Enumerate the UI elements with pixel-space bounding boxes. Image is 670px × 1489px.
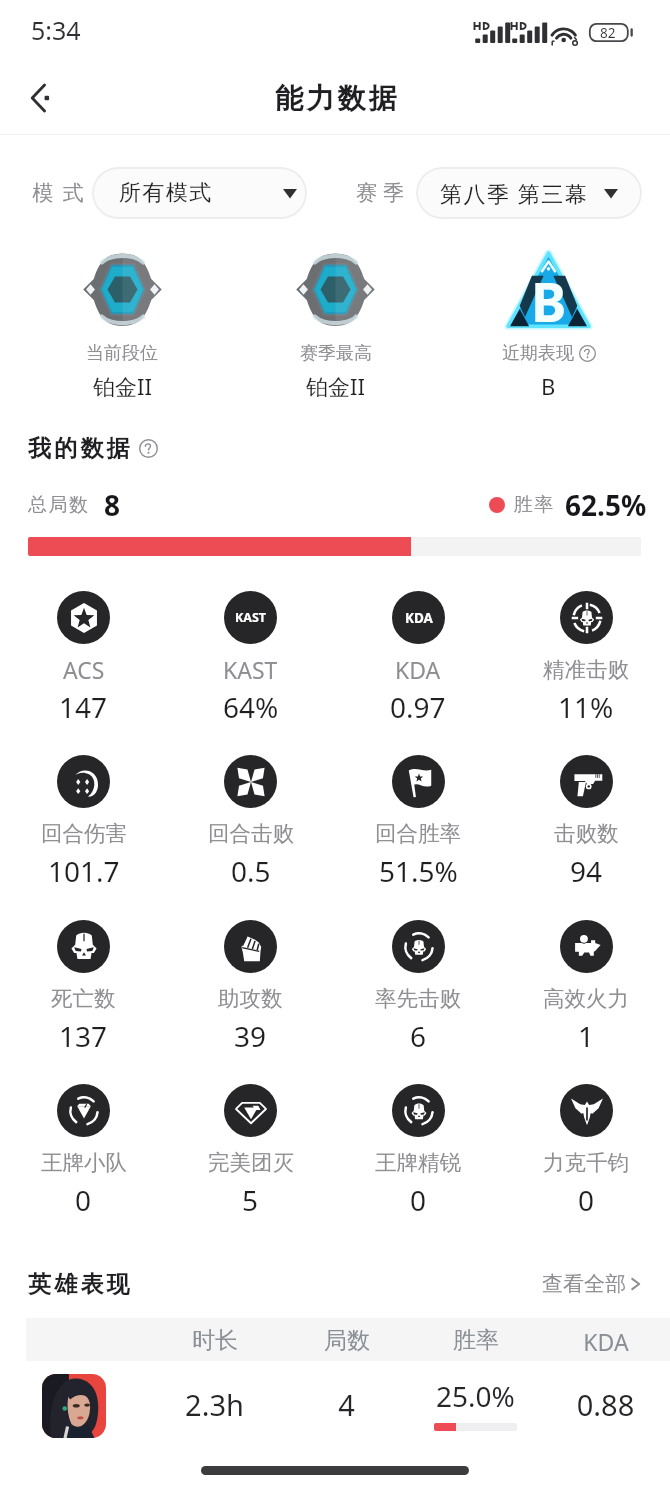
button[interactable]: 王牌小队: [0, 1084, 167, 1224]
staticText: 回合伤害: [41, 820, 127, 847]
button[interactable]: Back: [14, 72, 66, 124]
staticText: 胜率: [513, 493, 554, 517]
staticText: 64%: [223, 688, 279, 726]
button[interactable]: 力克千钧: [502, 1084, 670, 1224]
staticText: 137: [59, 1017, 108, 1055]
button[interactable]: 第八季 第三幕: [416, 167, 642, 219]
staticText: 能力数据: [275, 81, 400, 116]
button[interactable]: 查看全部: [542, 1265, 642, 1303]
staticText: 62.5%: [565, 486, 647, 524]
staticText: B: [531, 265, 567, 337]
staticText: 高效火力: [543, 985, 629, 1012]
staticText: 王牌小队: [41, 1149, 127, 1176]
staticText: 0: [75, 1181, 92, 1219]
staticText: 25.0%: [436, 1377, 515, 1415]
staticText: 死亡数: [51, 985, 116, 1012]
staticText: 助攻数: [218, 985, 283, 1012]
button[interactable]: 王牌精锐: [334, 1084, 502, 1224]
staticText: 我的数据: [28, 434, 133, 463]
staticText: KDA: [580, 1326, 632, 1357]
staticText: 英雄表现: [28, 1270, 133, 1299]
button[interactable]: 率先击败: [334, 920, 502, 1060]
staticText: 0.5: [231, 852, 271, 890]
staticText: 5:34: [31, 13, 81, 47]
button[interactable]: 2.3h: [0, 1361, 670, 1451]
button[interactable]: ACS: [0, 591, 167, 731]
button[interactable]: 击败数: [502, 755, 670, 895]
staticText: 39: [234, 1017, 267, 1055]
staticText: KAST: [223, 654, 278, 685]
staticText: 查看全部: [542, 1271, 626, 1297]
staticText: 率先击败: [375, 985, 461, 1012]
staticText: 82: [600, 24, 616, 42]
staticText: 8: [104, 486, 121, 524]
staticText: 6: [410, 1017, 427, 1055]
staticText: 击败数: [554, 820, 619, 847]
button[interactable]: 回合击败: [167, 755, 334, 895]
staticText: KAST: [235, 609, 267, 626]
staticText: 0: [410, 1181, 427, 1219]
button[interactable]: 回合伤害: [0, 755, 167, 895]
button[interactable]: 助攻数: [167, 920, 334, 1060]
button[interactable]: 死亡数: [0, 920, 167, 1060]
button[interactable]: 回合胜率: [334, 755, 502, 895]
staticText: 0.97: [390, 688, 446, 726]
staticText: 第八季 第三幕: [440, 178, 589, 208]
staticText: 总局数: [28, 493, 90, 517]
staticText: KDA: [405, 609, 433, 627]
staticText: 1: [578, 1017, 595, 1055]
staticText: 铂金II: [93, 371, 152, 401]
button[interactable]: 赛季最高: [229, 249, 442, 399]
staticText: 时长: [189, 1326, 241, 1355]
staticText: B: [541, 371, 556, 401]
staticText: 赛季: [353, 180, 407, 206]
button[interactable]: 精准击败: [502, 591, 670, 731]
staticText: 力克千钧: [543, 1149, 629, 1176]
staticText: KDA: [395, 654, 441, 685]
staticText: 4: [294, 1385, 399, 1424]
staticText: 王牌精锐: [375, 1149, 461, 1176]
button[interactable]: KAST: [167, 591, 334, 731]
staticText: 回合击败: [208, 820, 294, 847]
staticText: 147: [59, 688, 108, 726]
staticText: 铂金II: [306, 371, 365, 401]
button[interactable]: 当前段位: [15, 249, 229, 399]
staticText: 模式: [28, 180, 88, 206]
staticText: 0.88: [553, 1385, 658, 1424]
button[interactable]: 所有模式: [92, 167, 307, 219]
staticText: 0: [578, 1181, 595, 1219]
staticText: 近期表现: [502, 342, 574, 365]
staticText: 5: [242, 1181, 259, 1219]
staticText: 2.3h: [162, 1385, 267, 1424]
staticText: 精准击败: [543, 656, 629, 683]
staticText: ACS: [63, 654, 105, 685]
staticText: 94: [570, 852, 603, 890]
staticText: 所有模式: [118, 179, 212, 207]
staticText: 赛季最高: [300, 342, 372, 365]
button[interactable]: B: [442, 249, 655, 399]
staticText: 当前段位: [86, 342, 158, 365]
staticText: 51.5%: [379, 852, 458, 890]
button[interactable]: KDA: [334, 591, 502, 731]
staticText: 11%: [558, 688, 614, 726]
button[interactable]: 完美团灭: [167, 1084, 334, 1224]
staticText: 回合胜率: [375, 820, 461, 847]
staticText: 局数: [321, 1326, 373, 1355]
staticText: 101.7: [48, 852, 120, 890]
button[interactable]: 高效火力: [502, 920, 670, 1060]
staticText: 完美团灭: [208, 1149, 294, 1176]
staticText: 胜率: [450, 1326, 502, 1355]
